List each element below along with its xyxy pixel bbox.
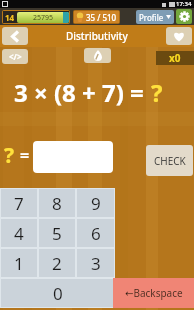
button[interactable]: 2 <box>39 249 75 277</box>
staticText: 5 <box>52 222 62 245</box>
button[interactable]: 9 <box>77 189 114 217</box>
button[interactable]: 7 <box>1 189 37 217</box>
staticText: 1 <box>14 252 24 275</box>
staticText: 3 × (8 + 7) = <box>14 76 151 109</box>
staticText: ? <box>4 141 15 170</box>
staticText: </> <box>9 51 22 62</box>
staticText: Distributivity <box>66 29 128 43</box>
button[interactable]: 5 <box>39 219 75 247</box>
staticText: 4 <box>14 222 24 245</box>
staticText: 7 <box>14 192 24 215</box>
button[interactable]: CHECK <box>146 145 193 176</box>
button[interactable]: 3 <box>77 249 114 277</box>
staticText: x0 <box>169 51 181 65</box>
button[interactable] <box>166 27 192 45</box>
button[interactable] <box>2 27 28 45</box>
button[interactable]: ←Backspace <box>113 278 194 308</box>
button[interactable]: 8 <box>39 189 75 217</box>
staticText: 6 <box>91 222 101 245</box>
button[interactable]: 0 <box>1 279 114 307</box>
button[interactable]: 6 <box>77 219 114 247</box>
button[interactable] <box>84 48 111 63</box>
staticText: 25795 <box>33 13 54 23</box>
button[interactable]: </> <box>2 49 28 64</box>
staticText: ←Backspace <box>125 286 183 300</box>
button[interactable] <box>176 9 192 24</box>
staticText: 2 <box>52 252 62 275</box>
staticText: 17:34 <box>176 0 192 8</box>
button[interactable]: Profile <box>139 10 171 24</box>
button[interactable]: 14 <box>3 11 69 23</box>
button[interactable]: x0 <box>156 51 194 65</box>
staticText: CHECK <box>154 154 186 168</box>
button[interactable]: 4 <box>1 219 37 247</box>
staticText: ? <box>151 76 163 109</box>
staticText: = <box>20 144 30 166</box>
staticText: 35 / 510 <box>86 12 117 23</box>
staticText: 3 <box>91 252 101 275</box>
button[interactable] <box>33 141 113 173</box>
button[interactable]: 35 / 510 <box>76 11 117 23</box>
staticText: 14 <box>5 12 15 23</box>
staticText: 8 <box>52 192 62 215</box>
button[interactable]: 1 <box>1 249 37 277</box>
staticText: 9 <box>91 192 101 215</box>
staticText: Profile <box>139 12 164 23</box>
staticText: 0 <box>53 282 63 305</box>
